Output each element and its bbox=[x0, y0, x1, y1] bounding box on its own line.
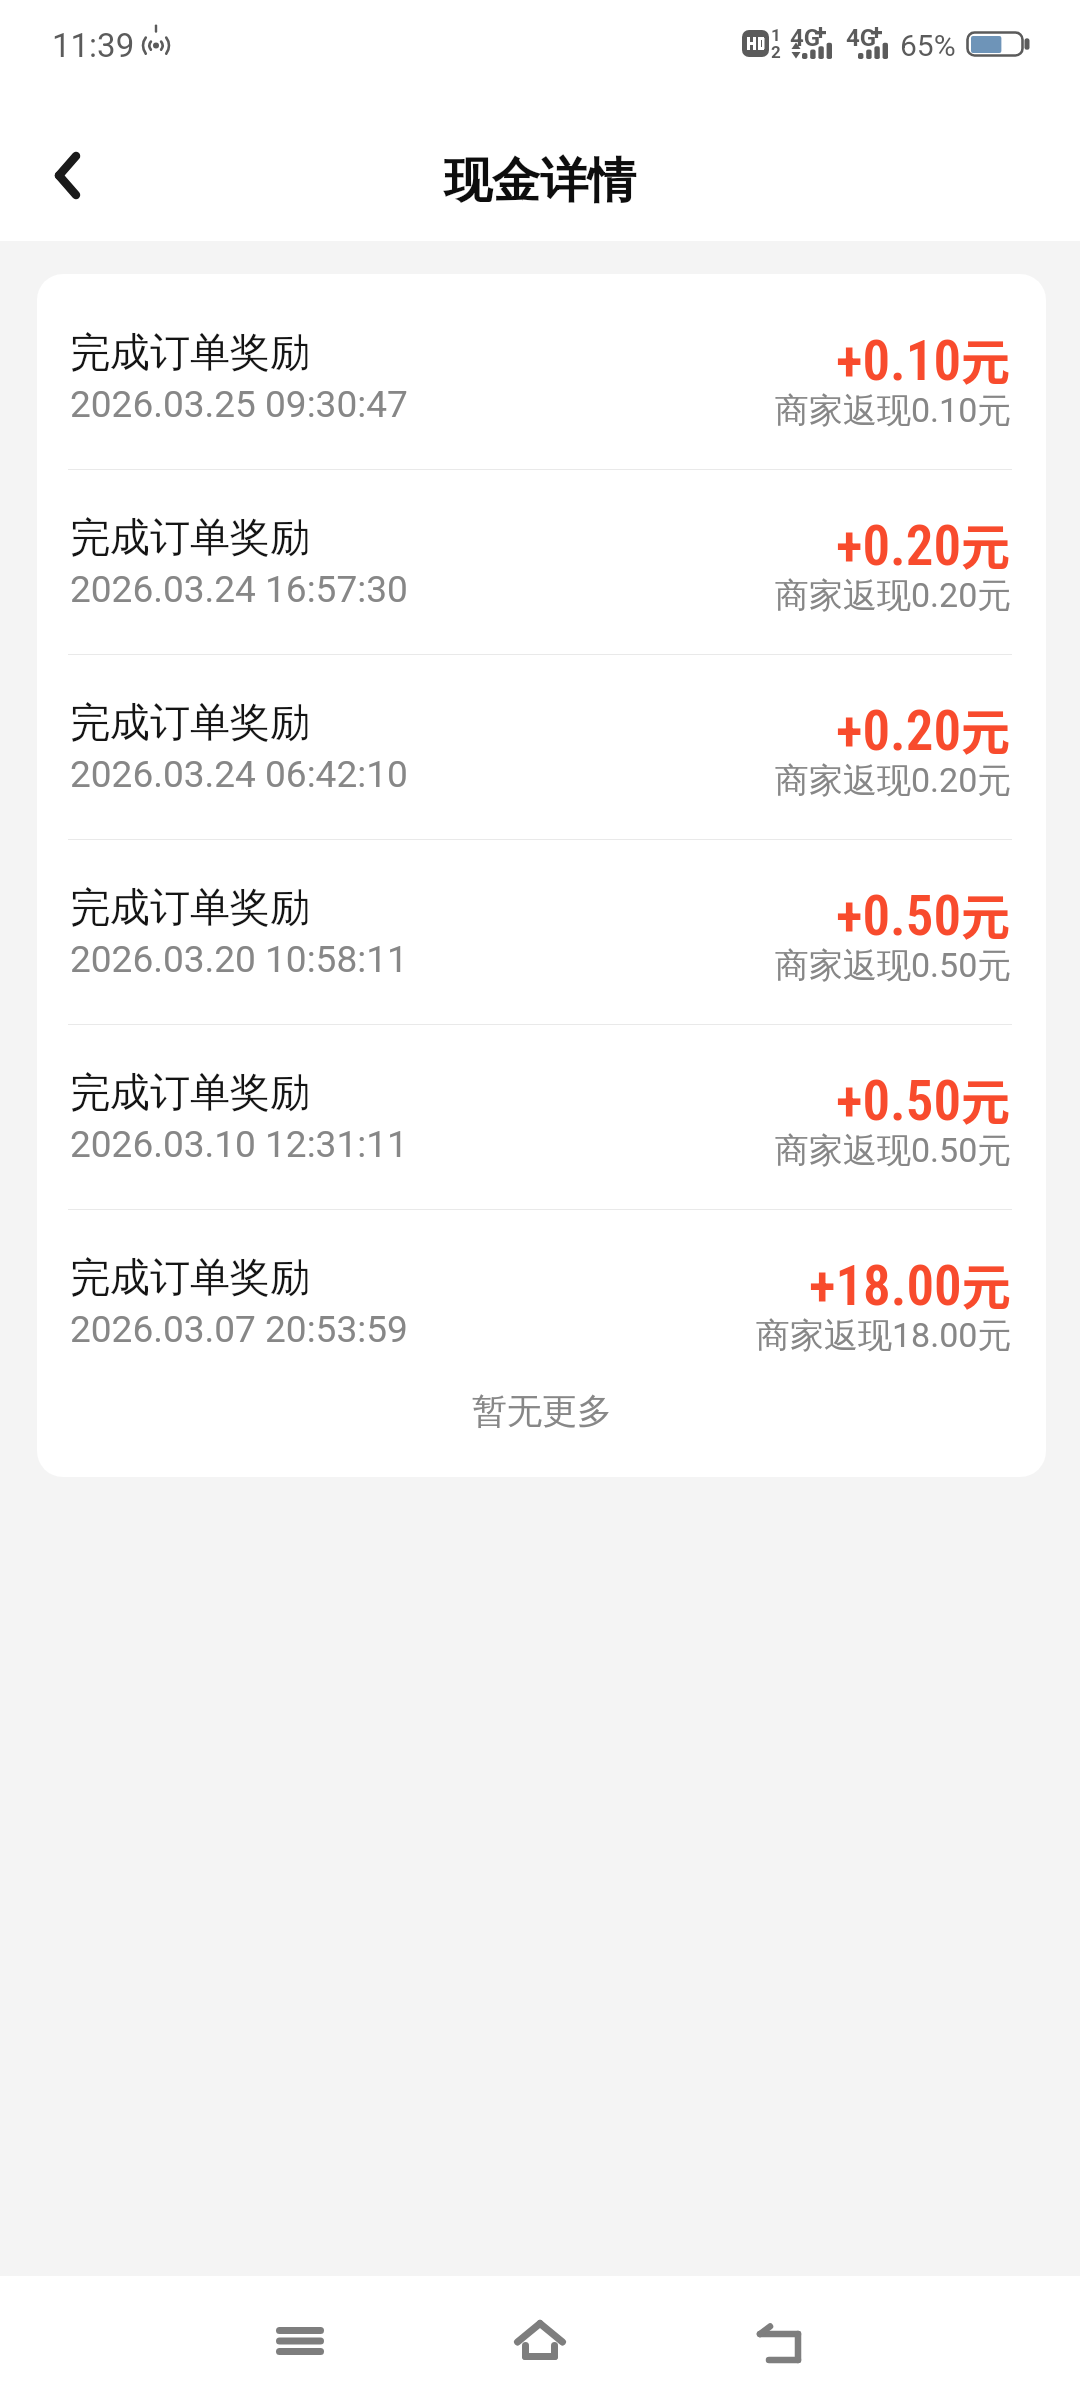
staticText: 2026.03.20 10:58:11 bbox=[70, 938, 408, 981]
staticText: 完成订单奖励 bbox=[70, 512, 310, 562]
staticText: 商家返现0.50元 bbox=[775, 944, 1012, 987]
button[interactable]: Back bbox=[11, 119, 123, 231]
button[interactable]: 完成订单奖励 bbox=[37, 655, 1046, 840]
staticText: 2026.03.10 12:31:11 bbox=[70, 1123, 408, 1166]
staticText: 4G bbox=[846, 24, 877, 52]
staticText: 完成订单奖励 bbox=[70, 882, 310, 932]
button[interactable]: 完成订单奖励 bbox=[37, 840, 1046, 1025]
staticText: 2026.03.25 09:30:47 bbox=[70, 383, 408, 426]
staticText: 暂无更多 bbox=[472, 1389, 612, 1433]
staticText: 2 bbox=[771, 42, 781, 62]
button[interactable]: Home bbox=[480, 2280, 600, 2400]
staticText: 完成订单奖励 bbox=[70, 327, 310, 377]
staticText: +0.10元 bbox=[836, 323, 1011, 394]
button[interactable]: 完成订单奖励 bbox=[37, 1025, 1046, 1210]
button[interactable]: Recent apps bbox=[240, 2281, 360, 2401]
button[interactable]: 完成订单奖励 bbox=[37, 285, 1046, 470]
staticText: 完成订单奖励 bbox=[70, 697, 310, 747]
staticText: +18.00元 bbox=[809, 1248, 1011, 1319]
staticText: 完成订单奖励 bbox=[70, 1067, 310, 1117]
staticText: 完成订单奖励 bbox=[70, 1252, 310, 1302]
button[interactable]: Back bbox=[720, 2287, 840, 2404]
staticText: 现金详情 bbox=[444, 151, 636, 211]
staticText: 1 bbox=[771, 25, 781, 45]
staticText: 2026.03.24 16:57:30 bbox=[70, 568, 408, 611]
staticText: 商家返现0.50元 bbox=[775, 1129, 1012, 1172]
staticText: 2026.03.07 20:53:59 bbox=[70, 1308, 408, 1351]
staticText: 商家返现0.20元 bbox=[775, 759, 1012, 802]
staticText: +0.50元 bbox=[836, 1063, 1011, 1134]
staticText: 商家返现0.20元 bbox=[775, 574, 1012, 617]
staticText: +0.20元 bbox=[836, 508, 1011, 579]
staticText: 4G bbox=[790, 24, 821, 52]
staticText: 65% bbox=[900, 28, 956, 63]
button[interactable]: 完成订单奖励 bbox=[37, 470, 1046, 655]
staticText: +0.50元 bbox=[836, 878, 1011, 949]
staticText: +0.20元 bbox=[836, 693, 1011, 764]
staticText: 商家返现0.10元 bbox=[775, 389, 1012, 432]
button[interactable]: 完成订单奖励 bbox=[37, 1210, 1046, 1395]
staticText: 11:39 bbox=[52, 26, 135, 65]
staticText: 2026.03.24 06:42:10 bbox=[70, 753, 408, 796]
staticText: 商家返现18.00元 bbox=[756, 1314, 1012, 1357]
